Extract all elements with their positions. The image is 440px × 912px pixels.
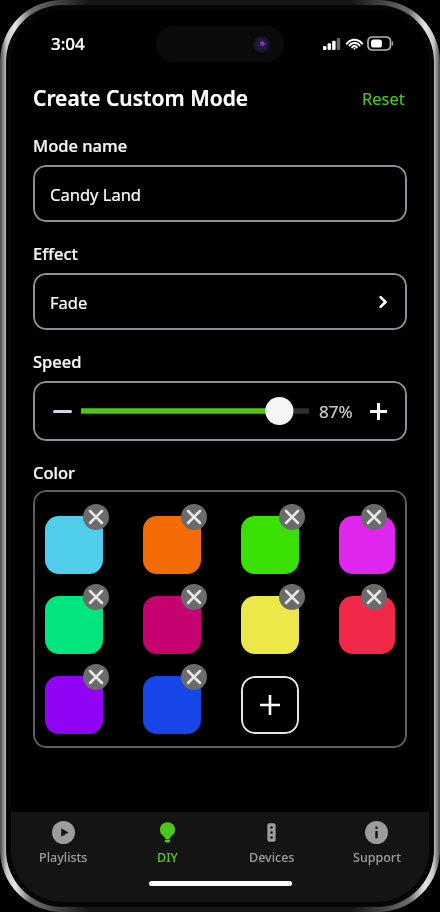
button[interactable]: Remove color (279, 584, 305, 610)
button[interactable]: Increase speed (361, 394, 395, 428)
button[interactable]: Remove color (181, 664, 207, 690)
button[interactable]: Color swatch (45, 676, 103, 734)
button[interactable]: Color swatch (143, 516, 201, 574)
button[interactable]: Color swatch (339, 516, 395, 574)
button[interactable]: Remove color (361, 584, 387, 610)
button[interactable]: Color swatch (339, 596, 395, 654)
staticText: Fade (50, 291, 375, 313)
button[interactable]: Support (324, 812, 429, 874)
staticText: Candy Land (50, 183, 141, 205)
button[interactable]: Remove color (361, 504, 387, 530)
staticText: Reset (362, 87, 405, 109)
button[interactable]: Remove color (83, 504, 109, 530)
button[interactable]: Remove color (83, 584, 109, 610)
button[interactable]: Remove color (279, 504, 305, 530)
staticText: Devices (249, 849, 295, 866)
staticText: Effect (33, 242, 78, 264)
button[interactable]: Reset (360, 81, 407, 115)
button[interactable]: Color swatch (241, 516, 299, 574)
button[interactable]: Devices (219, 812, 324, 874)
staticText: Mode name (33, 134, 128, 156)
button[interactable]: Color swatch (45, 516, 103, 574)
button[interactable]: Color swatch (45, 596, 103, 654)
button[interactable]: DIY (115, 812, 219, 874)
staticText: Support (353, 849, 401, 866)
button[interactable]: Color swatch (241, 596, 299, 654)
button[interactable]: Color swatch (143, 596, 201, 654)
button[interactable]: Effect Fade (33, 273, 407, 330)
staticText: Speed (33, 350, 82, 372)
staticText: Playlists (39, 849, 88, 866)
staticText: DIY (157, 849, 178, 866)
button[interactable]: Playlists (11, 812, 115, 874)
staticText: 3:04 (51, 32, 85, 55)
button[interactable]: Color swatch (143, 676, 201, 734)
staticText: Create Custom Mode (33, 84, 360, 113)
staticText: 87% (319, 400, 353, 423)
staticText: Color (33, 461, 76, 483)
button[interactable]: Remove color (181, 504, 207, 530)
button[interactable]: Remove color (181, 584, 207, 610)
button[interactable]: Remove color (83, 664, 109, 690)
button[interactable]: Decrease speed (45, 394, 79, 428)
button[interactable]: Add color (241, 676, 299, 734)
